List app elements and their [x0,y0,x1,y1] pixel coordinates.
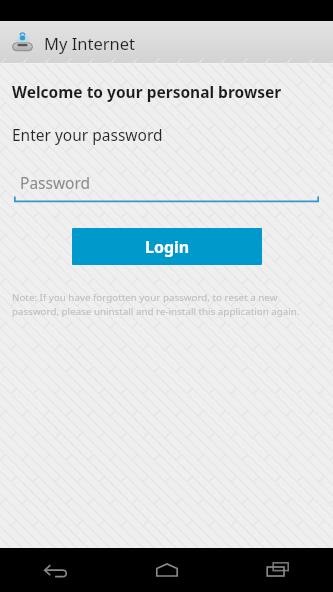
staticText: Enter your password [12,124,163,145]
staticText: Login [145,236,190,258]
button[interactable]: Login [72,228,262,265]
button[interactable]: Password [14,167,319,203]
staticText: Note: If you have forgotten your passwor… [12,291,307,317]
button[interactable]: Back [0,548,111,592]
staticText: Welcome to your personal browser [12,81,282,102]
staticText: My Internet [44,32,135,54]
button[interactable]: Recent apps [222,548,333,592]
other: My Internet app icon [11,31,34,54]
button[interactable]: Home [111,548,222,592]
staticText: Password [20,172,91,193]
